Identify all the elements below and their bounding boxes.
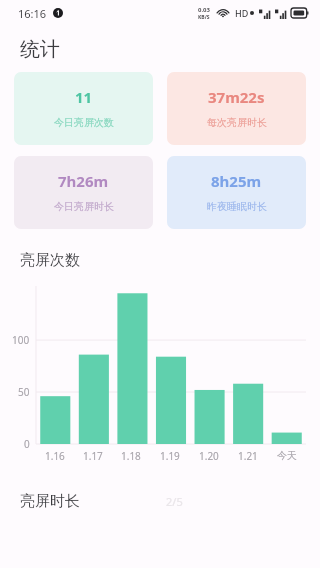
staticText: 100 — [12, 333, 30, 347]
staticText: 11 — [75, 87, 93, 107]
staticText: 1.21 — [238, 449, 258, 463]
other: Battery — [291, 8, 309, 18]
staticText: 37m22s — [208, 87, 265, 107]
staticText: 统计 — [20, 37, 60, 62]
staticText: 7h26m — [58, 171, 109, 191]
button[interactable]: 8h25m — [167, 156, 306, 229]
other: Wi-Fi — [217, 7, 229, 19]
staticText: 0 — [24, 437, 30, 451]
staticText: 1.17 — [83, 449, 103, 463]
button[interactable]: 7h26m — [14, 156, 153, 229]
staticText: 亮屏次数 — [20, 251, 80, 270]
staticText: 8h25m — [211, 171, 262, 191]
staticText: 1.16 — [45, 449, 65, 463]
staticText: 每次亮屏时长 — [207, 116, 267, 129]
staticText: 2/5 — [166, 494, 183, 509]
staticText: 1.18 — [121, 449, 141, 463]
staticText: KB/S — [198, 14, 210, 21]
staticText: 亮屏时长 — [20, 492, 80, 511]
staticText: 50 — [18, 385, 30, 399]
staticText: 16:16 — [18, 6, 47, 21]
button[interactable]: 37m22s — [167, 72, 306, 145]
staticText: 今日亮屏时长 — [54, 200, 114, 213]
staticText: 今天 — [277, 449, 297, 462]
staticText: 今日亮屏次数 — [54, 116, 114, 129]
staticText: 1.19 — [160, 449, 180, 463]
button[interactable]: 11 — [14, 72, 153, 145]
staticText: 0.03 — [198, 6, 210, 14]
staticText: 1.20 — [199, 449, 219, 463]
staticText: 昨夜睡眠时长 — [207, 200, 267, 213]
staticText: HD — [235, 7, 249, 19]
